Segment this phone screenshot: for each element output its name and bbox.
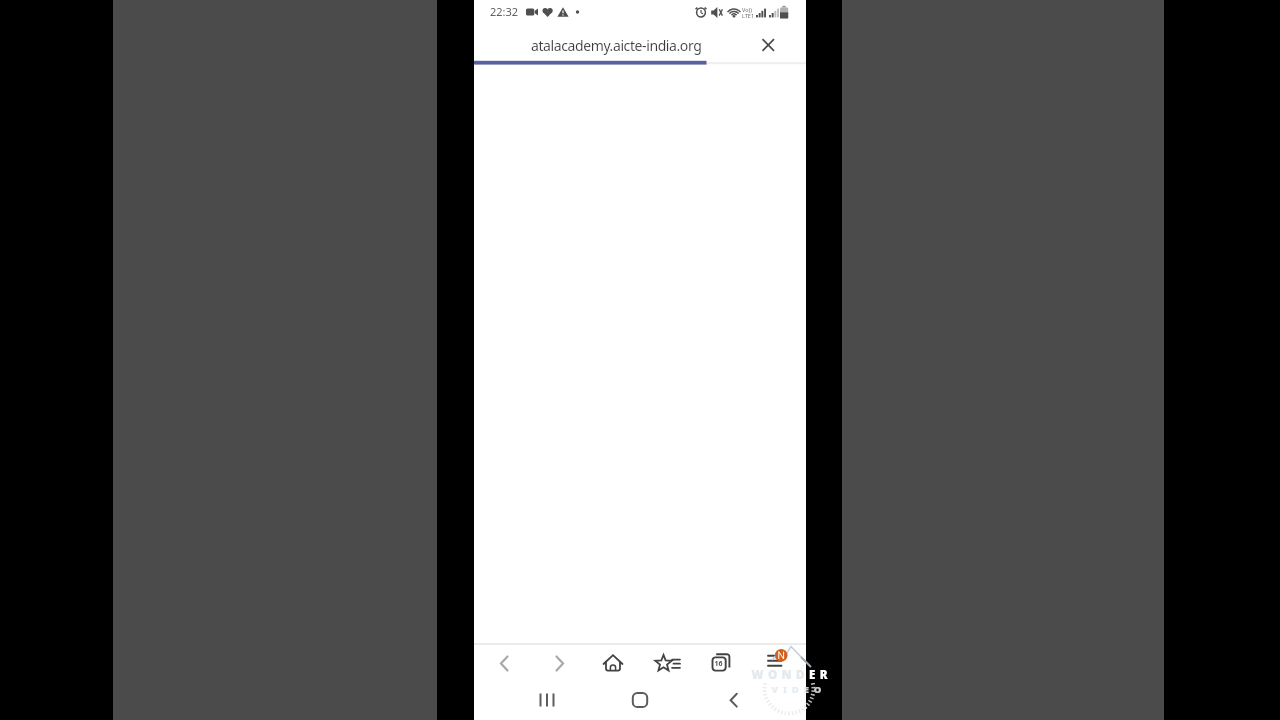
button[interactable] [650,648,682,680]
button[interactable] [544,648,576,680]
button[interactable] [756,33,790,57]
button[interactable]: atalacademy.aicte-india.org [474,33,758,57]
button[interactable] [488,648,520,680]
staticText: atalacademy.aicte-india.org [531,36,702,55]
staticText: 22:32 [490,4,519,19]
button[interactable] [759,648,791,680]
button[interactable] [624,686,656,714]
button[interactable] [704,648,736,680]
button[interactable] [531,686,563,714]
button[interactable] [718,686,750,714]
button[interactable] [597,648,629,680]
